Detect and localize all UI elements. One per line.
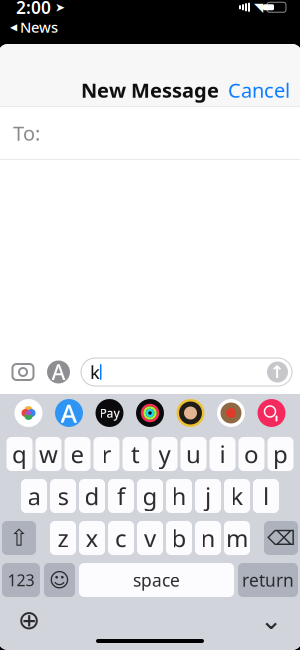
button[interactable]: Fitness	[136, 399, 164, 427]
staticText: ⌄	[260, 605, 282, 635]
staticText: g	[142, 480, 157, 512]
staticText: To:	[13, 120, 40, 146]
button[interactable]: w	[35, 437, 61, 471]
staticText: ↑	[270, 362, 285, 382]
button[interactable]: Cancel	[216, 70, 300, 110]
button[interactable]: y	[151, 437, 177, 471]
staticText: n	[200, 522, 215, 554]
button[interactable]: n	[195, 521, 221, 555]
staticText: 2:00	[16, 0, 51, 19]
button[interactable]: g	[137, 479, 163, 513]
staticText: Cancel	[228, 77, 290, 103]
button[interactable]: Memoji Stickers	[217, 399, 245, 427]
button[interactable]: return	[238, 563, 298, 597]
staticText: h	[171, 480, 186, 512]
staticText: ⇧	[9, 525, 28, 551]
button[interactable]: Delete	[264, 521, 298, 555]
staticText: u	[186, 438, 201, 470]
staticText: 123	[7, 569, 34, 591]
staticText: v	[144, 522, 156, 554]
staticText: i	[219, 438, 225, 470]
staticText: t	[131, 438, 140, 470]
staticText: o	[244, 438, 259, 470]
staticText: e	[70, 438, 84, 470]
button[interactable]: Shift	[2, 521, 36, 555]
button[interactable]: App Store	[47, 360, 70, 383]
staticText: News	[20, 17, 58, 37]
button[interactable]: u	[180, 437, 206, 471]
staticText: z	[57, 522, 68, 554]
staticText: l	[263, 480, 269, 512]
button[interactable]: v	[137, 521, 163, 555]
button[interactable]: Dictation	[254, 605, 288, 635]
button[interactable]: Memoji	[176, 399, 204, 427]
staticText: ➤	[51, 0, 65, 14]
staticText: b	[171, 522, 186, 554]
button[interactable]: space	[79, 563, 234, 597]
staticText: ◥	[250, 0, 267, 14]
button[interactable]: r	[93, 437, 119, 471]
staticText: p	[273, 438, 288, 470]
button[interactable]: j	[195, 479, 221, 513]
staticText: m	[226, 522, 248, 554]
button[interactable]: Apple Pay	[95, 399, 123, 427]
staticText: k	[230, 480, 243, 512]
staticText: s	[57, 480, 68, 512]
button[interactable]: l	[253, 479, 279, 513]
staticText: d	[84, 480, 99, 512]
staticText: a	[27, 480, 40, 512]
staticText: ☺	[49, 569, 70, 591]
staticText: ⌫	[267, 527, 295, 549]
button[interactable]: Images	[257, 399, 285, 427]
staticText: y	[158, 438, 170, 470]
button[interactable]: Photos	[14, 399, 42, 427]
button[interactable]: b	[166, 521, 192, 555]
button[interactable]: Emoji	[44, 563, 75, 597]
button[interactable]: q	[6, 437, 32, 471]
staticText: r	[101, 438, 111, 470]
button[interactable]: e	[64, 437, 90, 471]
staticText: q	[12, 438, 27, 470]
staticText: Pay	[99, 405, 119, 421]
staticText: j	[205, 480, 211, 512]
button[interactable]: m	[224, 521, 250, 555]
staticText: A	[60, 396, 77, 430]
button[interactable]: h	[166, 479, 192, 513]
button[interactable]: k	[224, 479, 250, 513]
button[interactable]: c	[108, 521, 134, 555]
staticText: ⊕	[18, 605, 40, 635]
staticText: f	[117, 480, 125, 512]
button[interactable]: i	[209, 437, 235, 471]
button[interactable]: a	[21, 479, 47, 513]
button[interactable]: s	[50, 479, 76, 513]
button[interactable]: p	[267, 437, 293, 471]
button[interactable]: k	[81, 358, 292, 386]
button[interactable]: f	[108, 479, 134, 513]
button[interactable]: o	[238, 437, 264, 471]
button[interactable]: Numbers	[2, 563, 40, 597]
staticText: w	[39, 438, 58, 470]
button[interactable]: d	[79, 479, 105, 513]
button[interactable]: z	[50, 521, 76, 555]
button[interactable]: t	[122, 437, 148, 471]
staticText: k	[90, 360, 100, 384]
staticText: x	[85, 522, 98, 554]
staticText: ◀	[10, 22, 17, 32]
staticText: c	[115, 522, 127, 554]
button[interactable]: Camera	[10, 359, 36, 385]
button[interactable]: Next keyboard	[12, 605, 46, 635]
button[interactable]: App Store	[55, 399, 83, 427]
button[interactable]: x	[79, 521, 105, 555]
staticText: New Message	[81, 77, 219, 103]
staticText: A	[51, 358, 65, 386]
staticText: space	[133, 568, 180, 591]
staticText: return	[242, 568, 294, 591]
